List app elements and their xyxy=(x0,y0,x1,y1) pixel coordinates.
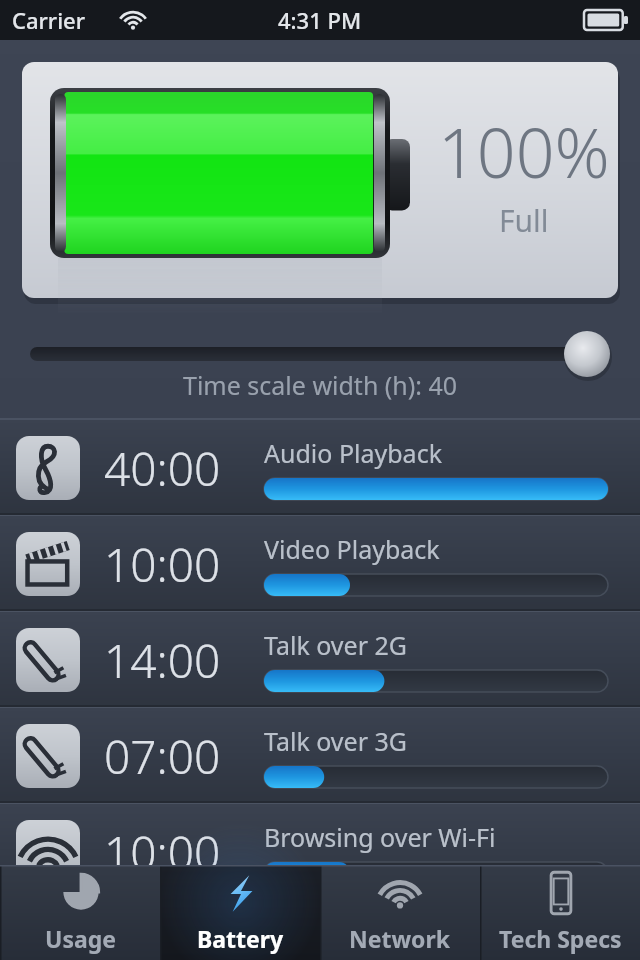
staticText: Video Playback xyxy=(264,532,440,566)
button[interactable]: Tech Specs xyxy=(480,865,640,960)
staticText: 40:00 xyxy=(104,437,264,500)
staticText: 100% xyxy=(438,105,610,198)
staticText: 4:31 PM xyxy=(278,5,362,35)
staticText: Network xyxy=(349,923,451,954)
staticText: Talk over 2G xyxy=(264,628,407,662)
button[interactable]: Network xyxy=(320,865,480,960)
staticText: Time scale width (h): 40 xyxy=(183,368,458,402)
staticText: 14:00 xyxy=(104,629,264,692)
button[interactable]: 07:00 xyxy=(0,708,640,804)
button[interactable]: 14:00 xyxy=(0,612,640,708)
staticText: Carrier xyxy=(12,5,86,35)
staticText: 10:00 xyxy=(104,533,264,596)
staticText: Battery xyxy=(197,923,284,954)
staticText: Usage xyxy=(45,923,116,954)
button[interactable]: Battery xyxy=(160,865,320,960)
staticText: 07:00 xyxy=(104,725,264,788)
staticText: Talk over 3G xyxy=(264,724,407,758)
button[interactable]: 10:00 xyxy=(0,804,640,900)
button[interactable]: 10:00 xyxy=(0,516,640,612)
button[interactable]: 40:00 xyxy=(0,420,640,516)
button[interactable]: Usage xyxy=(0,865,160,960)
staticText: Browsing over Wi-Fi xyxy=(264,820,496,854)
staticText: Tech Specs xyxy=(499,923,622,954)
staticText: Full xyxy=(499,200,549,241)
staticText: 10:00 xyxy=(104,821,264,884)
staticText: Audio Playback xyxy=(264,436,442,470)
